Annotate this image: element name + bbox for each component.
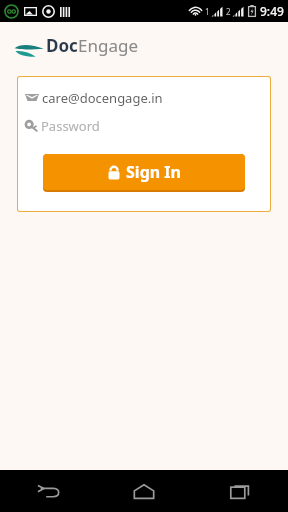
staticText: 1 xyxy=(205,6,210,17)
button[interactable]: Back xyxy=(0,470,96,512)
button[interactable]: Recent apps xyxy=(192,470,288,512)
staticText: 9:49 xyxy=(260,3,284,19)
button[interactable]: Sign In xyxy=(43,154,245,190)
staticText: Password xyxy=(41,117,100,135)
staticText: Doc xyxy=(46,34,78,57)
button[interactable]: Home xyxy=(96,470,192,512)
button[interactable]: Password xyxy=(18,116,270,135)
button[interactable]: care@docengage.in xyxy=(18,88,270,107)
staticText: care@docengage.in xyxy=(42,89,163,107)
staticText: Sign In xyxy=(126,161,181,183)
staticText: 2 xyxy=(226,6,231,17)
staticText: Engage xyxy=(78,34,138,57)
